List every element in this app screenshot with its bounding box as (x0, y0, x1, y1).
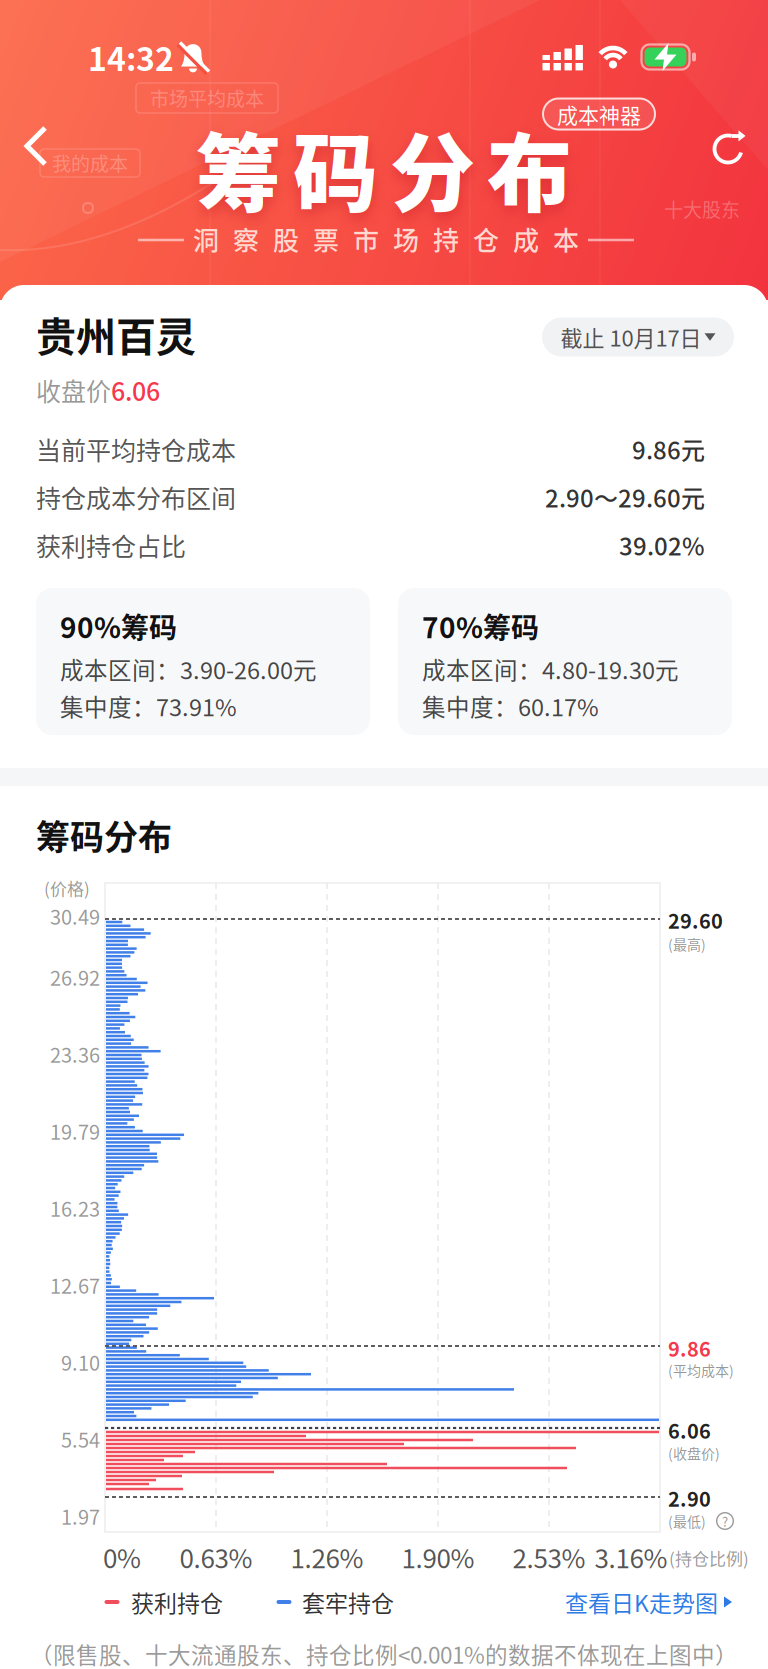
staticText: （限售股、十大流通股东、持仓比例<0.001%的数据不体现在上图中） (30, 1638, 738, 1669)
staticText: 集中度：60.17% (422, 689, 599, 723)
staticText: 十大股东 (664, 195, 740, 223)
staticText: 成本神器 (557, 99, 641, 129)
staticText: 12.67 (50, 1270, 100, 1299)
staticText: 0% (103, 1538, 141, 1576)
staticText: 2.90～29.60元 (545, 480, 705, 514)
button[interactable]: 截止 10月17日 (542, 317, 734, 356)
staticText: 6.06 (111, 372, 160, 408)
staticText: 19.79 (50, 1116, 100, 1145)
staticText: 当前平均持仓成本 (36, 431, 236, 467)
staticText: 截止 10月17日 (560, 321, 701, 353)
staticText: 洞察股票市场持仓成本 (193, 220, 579, 258)
staticText: 3.16% (594, 1538, 667, 1576)
staticText: 成本区间：4.80-19.30元 (422, 652, 679, 686)
staticText: 9.86元 (632, 432, 705, 466)
button[interactable]: Back (24, 125, 50, 169)
staticText: 成本区间：3.90-26.00元 (60, 652, 317, 686)
staticText: 0.63% (179, 1538, 252, 1576)
staticText: 9.86 (668, 1333, 711, 1362)
staticText: 1.26% (290, 1538, 363, 1576)
staticText: 5.54 (61, 1424, 100, 1453)
button[interactable]: 查看日K走势图 (565, 1585, 732, 1619)
button[interactable]: 说明 (716, 1512, 734, 1530)
staticText: (持仓比例) (669, 1546, 749, 1570)
staticText: 获利持仓 (131, 1585, 223, 1619)
staticText: 集中度：73.91% (60, 689, 237, 723)
staticText: 6.06 (668, 1415, 711, 1444)
staticText: 39.02% (619, 528, 705, 562)
staticText: (价格) (44, 876, 90, 900)
staticText: 市场平均成本 (150, 84, 264, 112)
staticText: 我的成本 (52, 149, 128, 177)
button[interactable]: 成本神器 (543, 98, 655, 129)
staticText: 9.10 (61, 1347, 100, 1376)
staticText: 90%筹码 (60, 606, 177, 646)
staticText: 70%筹码 (422, 606, 539, 646)
staticText: 14:32 (88, 34, 174, 80)
staticText: 获利持仓占比 (36, 527, 186, 563)
staticText: 套牢持仓 (302, 1585, 394, 1619)
staticText: 2.53% (512, 1538, 585, 1576)
staticText: 1.97 (61, 1501, 100, 1530)
staticText: (最低) (668, 1511, 706, 1531)
button[interactable]: Refresh (707, 125, 751, 169)
staticText: (收盘价) (668, 1443, 720, 1463)
staticText: 23.36 (50, 1039, 100, 1068)
staticText: 2.90 (668, 1483, 711, 1512)
staticText: 筹码分布 (36, 810, 172, 860)
staticText: 筹码分布 (196, 106, 572, 230)
staticText: ? (722, 1512, 728, 1530)
staticText: 16.23 (50, 1193, 100, 1222)
staticText: 29.60 (668, 905, 723, 934)
staticText: (平均成本) (668, 1360, 734, 1380)
staticText: 收盘价 (36, 372, 111, 408)
staticText: 26.92 (50, 962, 100, 991)
staticText: 查看日K走势图 (565, 1585, 718, 1619)
staticText: (最高) (668, 934, 706, 954)
staticText: 1.90% (401, 1538, 474, 1576)
staticText: 持仓成本分布区间 (36, 479, 236, 515)
staticText: 30.49 (50, 901, 100, 930)
staticText: 贵州百灵 (36, 305, 196, 363)
